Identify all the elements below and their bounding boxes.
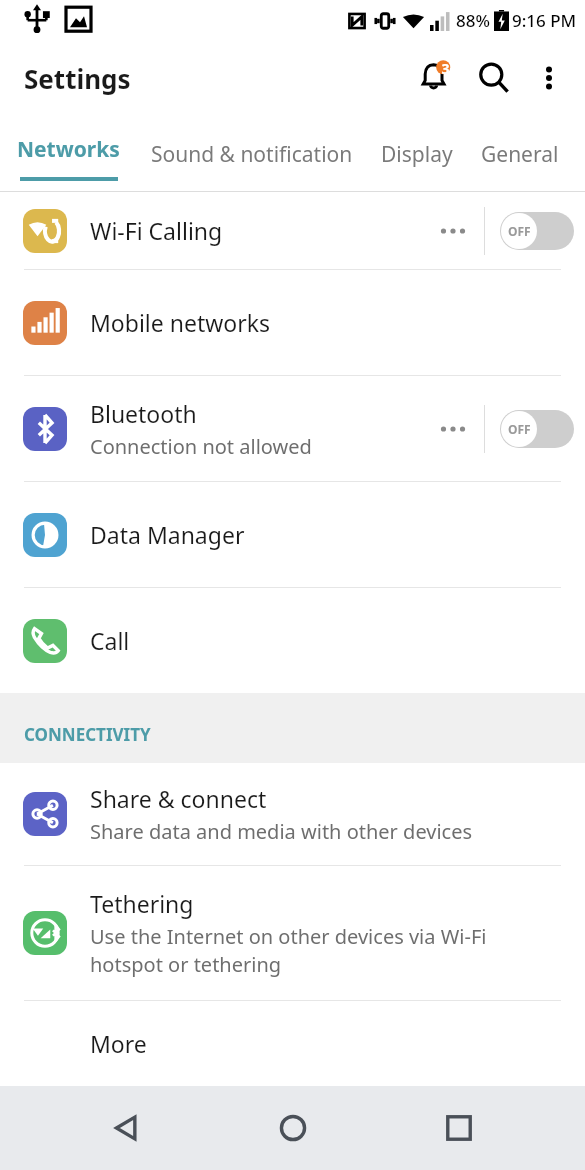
button[interactable]: Home (253, 1088, 333, 1168)
button[interactable]: Mobile networks (0, 270, 585, 375)
button[interactable]: Bluetooth (0, 376, 585, 481)
button[interactable]: Back (86, 1088, 166, 1168)
button[interactable]: Bluetooth options (427, 376, 479, 481)
staticText: Data Manager (90, 519, 245, 550)
staticText: OFF (508, 223, 531, 239)
button[interactable]: Tethering (0, 866, 585, 1000)
staticText: Use the Internet on other devices via Wi… (90, 923, 561, 978)
button[interactable]: Wi-Fi Calling options (427, 192, 479, 269)
button[interactable]: Recent apps (419, 1088, 499, 1168)
button[interactable]: Search (465, 49, 523, 107)
button[interactable]: Share & connect (0, 763, 585, 865)
staticText: Bluetooth (90, 398, 197, 429)
button[interactable]: More options (523, 52, 575, 104)
button[interactable]: Data Manager (0, 482, 585, 587)
button[interactable]: Networks (0, 116, 137, 192)
staticText: Share data and media with other devices (90, 818, 473, 845)
staticText: CONNECTIVITY (24, 723, 151, 746)
staticText: OFF (508, 421, 531, 437)
button[interactable]: Sound & notification (137, 116, 367, 192)
button[interactable]: Display (367, 116, 467, 192)
staticText: Call (90, 625, 130, 656)
staticText: 9:16 PM (512, 9, 577, 32)
staticText: General (481, 140, 559, 169)
staticText: Sound & notification (151, 140, 353, 169)
staticText: Wi-Fi Calling (90, 215, 223, 246)
staticText: 3 (441, 59, 450, 78)
staticText: More (90, 1028, 147, 1059)
button[interactable]: Notifications, 3 new (407, 49, 465, 107)
staticText: Connection not allowed (90, 433, 312, 460)
staticText: Settings (24, 61, 131, 96)
button[interactable]: Bluetooth toggle, off (489, 376, 585, 481)
button[interactable]: Wi-Fi Calling (0, 192, 585, 269)
staticText: Mobile networks (90, 307, 271, 338)
staticText: Display (381, 140, 453, 169)
staticText: Networks (17, 135, 120, 164)
button[interactable]: General (467, 116, 573, 192)
staticText: 88% (456, 9, 490, 32)
staticText: Tethering (90, 888, 194, 919)
button[interactable]: Call (0, 588, 585, 693)
button[interactable]: More (0, 1001, 585, 1086)
button[interactable]: Wi-Fi Calling toggle, off (489, 192, 585, 269)
staticText: Share & connect (90, 783, 267, 814)
